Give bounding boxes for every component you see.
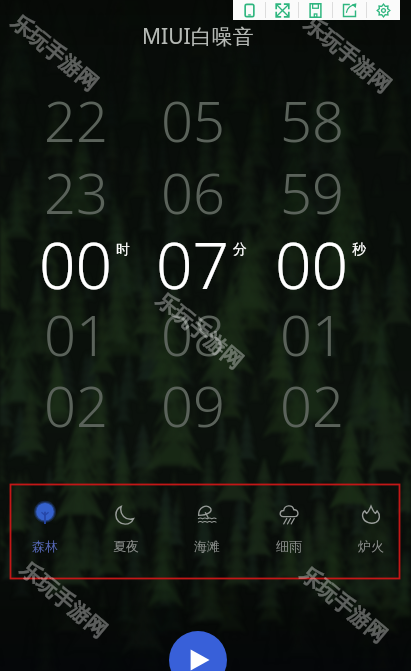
button[interactable]: 夏夜 xyxy=(85,490,166,560)
staticText: 乐玩手游网 xyxy=(15,556,112,644)
staticText: 59 xyxy=(280,154,344,230)
staticText: 02 xyxy=(44,367,108,443)
staticText: 秒 xyxy=(352,241,366,259)
button[interactable]: Expand xyxy=(266,0,298,20)
button[interactable]: 森林 xyxy=(4,490,85,560)
staticText: 乐玩手游网 xyxy=(6,9,103,97)
staticText: 00 xyxy=(39,221,113,301)
staticText: 22 xyxy=(44,82,108,158)
staticText: 乐玩手游网 xyxy=(299,11,396,99)
button[interactable]: Share xyxy=(333,0,366,20)
staticText: 炉火 xyxy=(358,538,384,554)
staticText: 细雨 xyxy=(276,538,302,554)
button[interactable]: 细雨 xyxy=(248,490,330,560)
staticText: 02 xyxy=(280,367,344,443)
button[interactable]: 炉火 xyxy=(330,490,411,560)
staticText: 00 xyxy=(275,221,349,301)
staticText: 08 xyxy=(161,296,225,372)
staticText: 09 xyxy=(161,367,225,443)
button[interactable]: Save xyxy=(299,0,332,20)
staticText: 森林 xyxy=(32,538,58,554)
staticText: 05 xyxy=(161,82,225,158)
button[interactable]: Play xyxy=(169,631,227,671)
staticText: 01 xyxy=(280,296,344,372)
button[interactable]: Phone xyxy=(233,0,265,20)
staticText: 01 xyxy=(44,296,108,372)
staticText: 时 xyxy=(116,241,130,259)
staticText: 海滩 xyxy=(194,538,220,554)
staticText: 06 xyxy=(161,154,225,230)
staticText: 分 xyxy=(233,241,247,259)
staticText: 07 xyxy=(156,221,230,301)
staticText: 58 xyxy=(280,82,344,158)
button[interactable]: Settings xyxy=(367,0,400,20)
staticText: MIUI白噪音 xyxy=(142,22,254,48)
staticText: 23 xyxy=(44,154,108,230)
staticText: 乐玩手游网 xyxy=(295,561,392,649)
staticText: 乐玩手游网 xyxy=(151,287,248,375)
staticText: 夏夜 xyxy=(113,538,139,554)
button[interactable]: 海滩 xyxy=(166,490,248,560)
